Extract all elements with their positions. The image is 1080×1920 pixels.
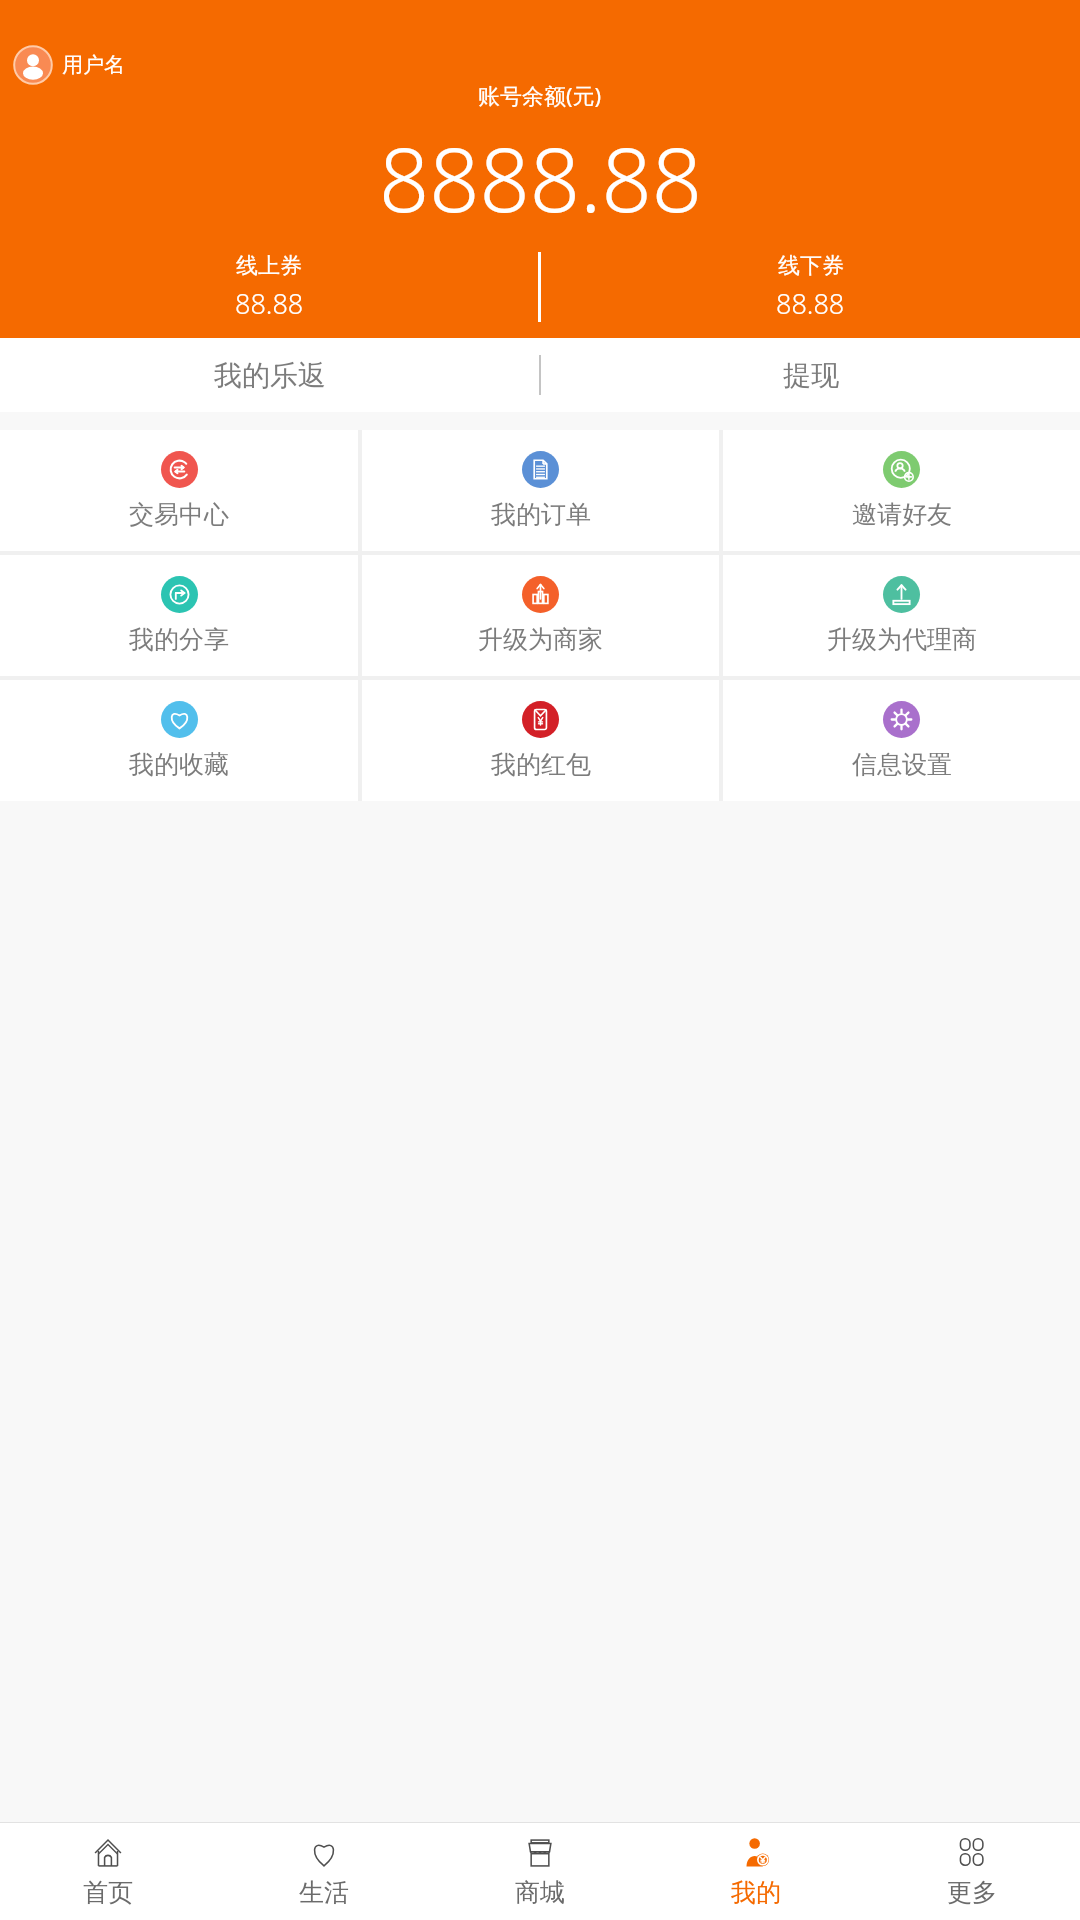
button[interactable]: 生活 <box>216 1823 432 1920</box>
button[interactable]: 邀请好友 <box>723 430 1080 551</box>
staticText: 邀请好友 <box>852 499 952 530</box>
button[interactable]: 商城 <box>432 1823 648 1920</box>
staticText: 我的红包 <box>491 749 591 780</box>
staticText: 信息设置 <box>852 749 952 780</box>
staticText: 生活 <box>299 1877 349 1908</box>
staticText: 更多 <box>947 1877 997 1908</box>
staticText: 88.88 <box>776 285 845 322</box>
staticText: 用户名 <box>62 52 125 78</box>
staticText: 线上券 <box>236 252 302 280</box>
button[interactable]: 线上券 <box>0 252 538 322</box>
button[interactable]: 我的订单 <box>362 430 719 551</box>
button[interactable]: 升级为商家 <box>362 555 719 676</box>
button[interactable]: 更多 <box>864 1823 1080 1920</box>
button[interactable]: 线下券 <box>541 252 1080 322</box>
button[interactable]: 提现 <box>541 338 1080 412</box>
button[interactable]: 升级为代理商 <box>723 555 1080 676</box>
staticText: 88.88 <box>235 285 304 322</box>
staticText: 我的收藏 <box>129 749 229 780</box>
staticText: 我的分享 <box>129 624 229 655</box>
button[interactable]: 信息设置 <box>723 680 1080 801</box>
staticText: 我的 <box>731 1877 781 1908</box>
button[interactable]: 交易中心 <box>0 430 358 551</box>
staticText: 升级为商家 <box>478 624 603 655</box>
staticText: 8888.88 <box>379 118 702 238</box>
staticText: 交易中心 <box>129 499 229 530</box>
button[interactable]: 我的乐返 <box>0 338 539 412</box>
staticText: 提现 <box>783 358 839 393</box>
staticText: 账号余额(元) <box>478 80 602 110</box>
button[interactable]: 我的收藏 <box>0 680 358 801</box>
button[interactable]: 我的红包 <box>362 680 719 801</box>
staticText: 我的订单 <box>491 499 591 530</box>
staticText: 商城 <box>515 1877 565 1908</box>
button[interactable]: 首页 <box>0 1823 216 1920</box>
staticText: 升级为代理商 <box>827 624 977 655</box>
button[interactable]: 用户名 <box>13 45 125 85</box>
staticText: 首页 <box>83 1877 133 1908</box>
staticText: 我的乐返 <box>214 358 326 393</box>
staticText: 线下券 <box>778 252 844 280</box>
button[interactable]: 我的分享 <box>0 555 358 676</box>
button[interactable]: 我的 <box>648 1823 864 1920</box>
